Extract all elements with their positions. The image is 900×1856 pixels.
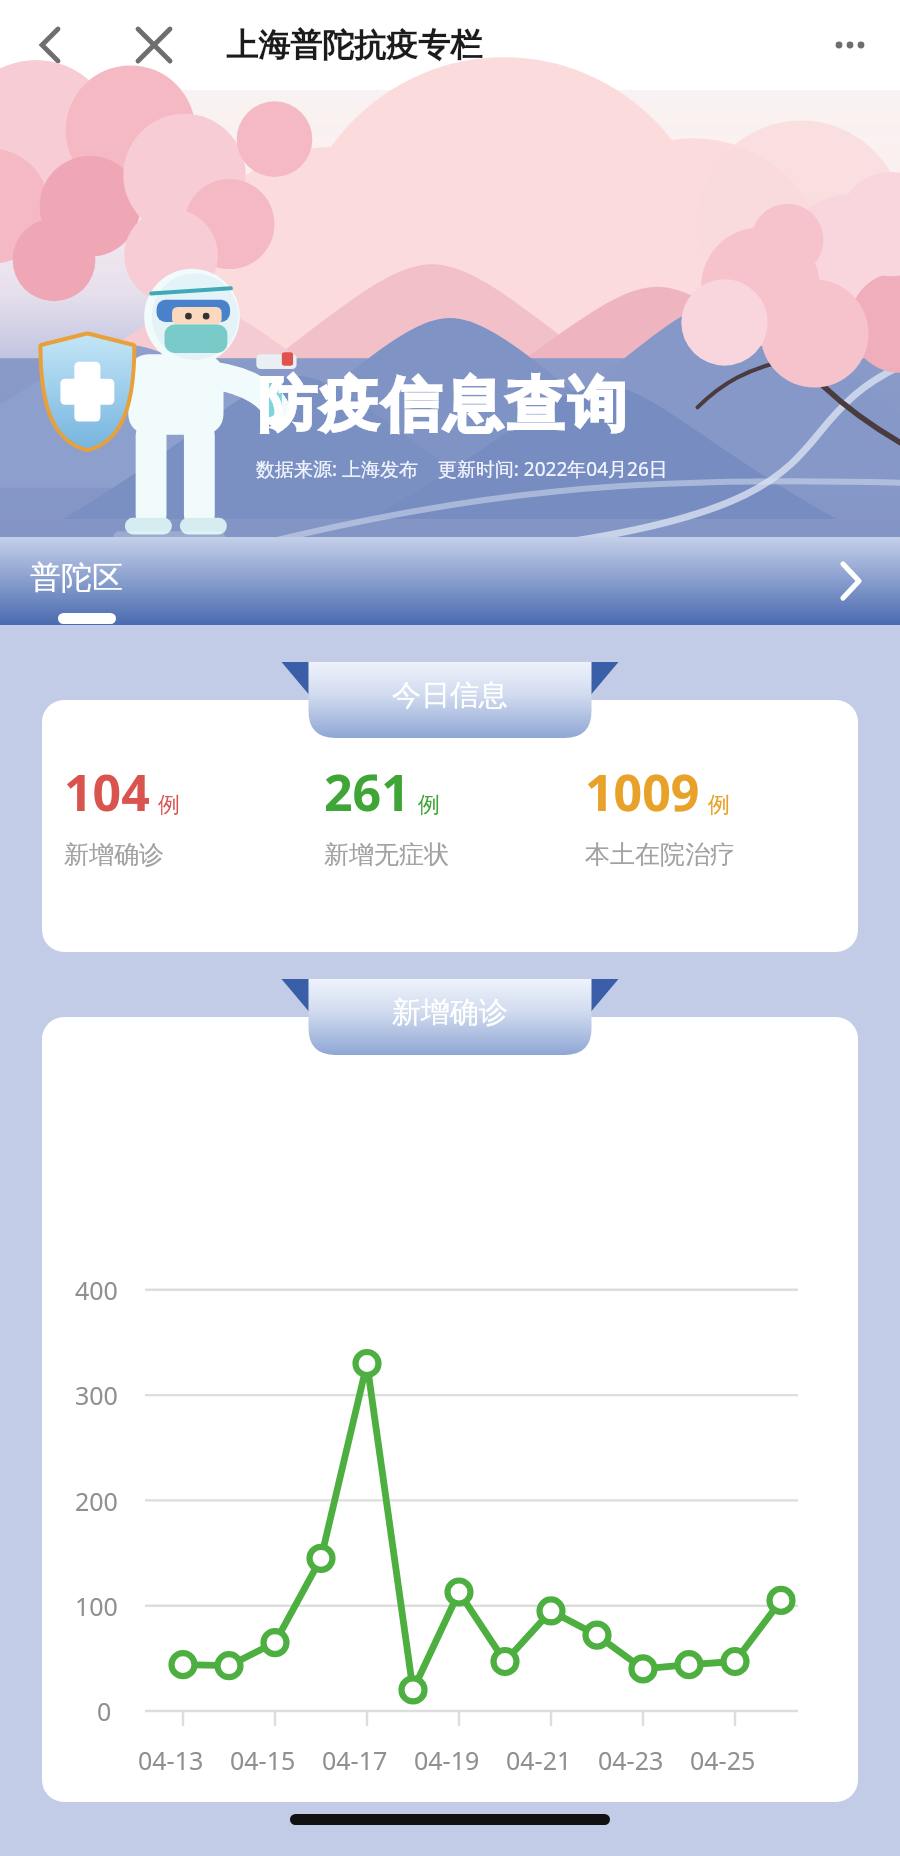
staticText: 新增无症状 — [324, 839, 449, 870]
staticText: 04-13 — [138, 1743, 204, 1777]
staticText: 新增确诊 — [392, 994, 508, 1031]
staticText: 今日信息 — [392, 677, 508, 714]
staticText: 04-17 — [322, 1743, 388, 1777]
staticText: 261 — [324, 758, 410, 826]
staticText: 200 — [75, 1484, 118, 1518]
staticText: 400 — [75, 1273, 118, 1307]
staticText: 04-23 — [598, 1743, 664, 1777]
staticText: 04-15 — [230, 1743, 296, 1777]
staticText: 例 — [418, 791, 440, 819]
staticText: 100 — [75, 1589, 118, 1623]
staticText: 防疫信息查询 — [256, 368, 628, 442]
button[interactable]: 普陀区 — [0, 537, 900, 625]
staticText: 新增确诊 — [64, 839, 164, 870]
staticText: 数据来源: 上海发布 更新时间: 2022年04月26日 — [256, 456, 668, 482]
staticText: 本土在院治疗 — [585, 839, 735, 870]
button[interactable]: Close — [126, 17, 182, 73]
staticText: 例 — [158, 791, 180, 819]
button[interactable]: 400 — [42, 1017, 858, 1802]
staticText: 300 — [75, 1378, 118, 1412]
button[interactable]: Back — [22, 17, 78, 73]
staticText: 上海普陀抗疫专栏 — [226, 25, 482, 65]
staticText: 04-21 — [506, 1743, 572, 1777]
staticText: 例 — [708, 791, 730, 819]
button[interactable]: 104 — [42, 700, 858, 952]
staticText: 0 — [97, 1694, 112, 1728]
staticText: 04-19 — [414, 1743, 480, 1777]
button[interactable]: More options — [822, 17, 878, 73]
staticText: 04-25 — [690, 1743, 756, 1777]
staticText: 104 — [64, 758, 150, 826]
staticText: 普陀区 — [30, 558, 123, 597]
staticText: 1009 — [585, 758, 700, 826]
other: Select district — [828, 558, 874, 604]
